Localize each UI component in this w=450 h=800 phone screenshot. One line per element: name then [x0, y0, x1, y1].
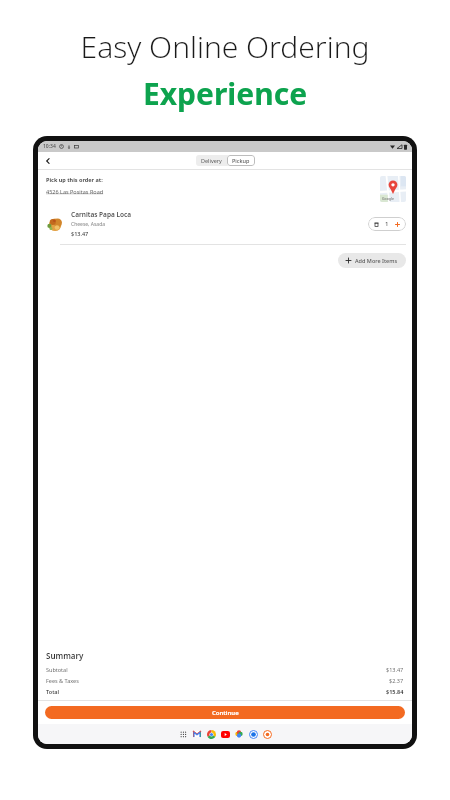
staticText: Total [46, 688, 60, 695]
staticText: 4526 Las Positas Road [46, 188, 104, 195]
staticText: Add More Items [355, 257, 398, 264]
button[interactable]: 4526 Las Positas Road [46, 188, 104, 195]
button[interactable]: App [260, 727, 274, 741]
button[interactable]: All apps [176, 727, 190, 741]
button[interactable]: YouTube [218, 727, 232, 741]
staticText: $2.37 [389, 677, 404, 684]
staticText: 10:34 [43, 143, 56, 150]
staticText: $13.47 [71, 230, 89, 237]
staticText: Experience [0, 73, 450, 114]
button[interactable]: Gmail [190, 727, 204, 741]
button[interactable]: Google Photos [232, 727, 246, 741]
button[interactable]: Pickup [227, 155, 255, 166]
button[interactable]: Continue [45, 706, 405, 719]
button[interactable]: Add More Items [338, 253, 406, 268]
staticText: Pickup [232, 157, 250, 164]
staticText: Pick up this order at: [46, 176, 103, 183]
staticText: Cheese, Asada [71, 221, 106, 228]
staticText: Subtotal [46, 666, 68, 673]
staticText: Google [382, 196, 394, 201]
button[interactable]: Add item [394, 221, 401, 228]
button[interactable]: Back [42, 155, 54, 167]
staticText: Summary [46, 650, 84, 661]
staticText: Continue [212, 709, 239, 717]
button[interactable]: Delivery [196, 155, 227, 166]
staticText: Easy Online Ordering [0, 26, 450, 67]
button[interactable]: Remove item [373, 221, 380, 228]
staticText: $13.47 [386, 666, 404, 673]
staticText: Fees & Taxes [46, 677, 79, 684]
button[interactable]: Carnitas Papa Loca [46, 210, 406, 237]
staticText: 1 [385, 220, 389, 228]
button[interactable]: Messages [246, 727, 260, 741]
button[interactable]: Chrome [204, 727, 218, 741]
staticText: Delivery [201, 157, 222, 164]
button[interactable]: Map [380, 176, 406, 202]
staticText: Carnitas Papa Loca [71, 210, 132, 219]
staticText: $15.84 [386, 688, 404, 695]
